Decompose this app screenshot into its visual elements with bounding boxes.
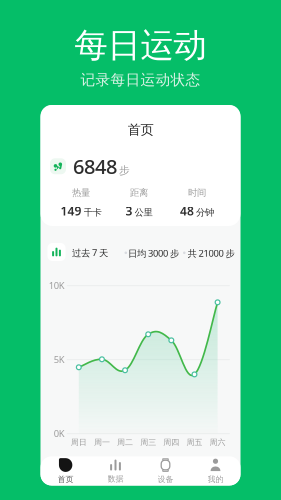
staticText: 千卡 — [83, 207, 101, 218]
staticText: 10K — [49, 279, 65, 291]
button[interactable]: 设备 — [140, 457, 190, 485]
staticText: 周一 — [94, 437, 110, 447]
staticText: 过去 7 天 — [72, 246, 108, 259]
staticText: 热量 — [72, 187, 90, 198]
staticText: 周二 — [117, 437, 133, 447]
staticText: 公里 — [134, 207, 152, 218]
staticText: 共 21000 步 — [187, 247, 234, 259]
staticText: 时间 — [188, 187, 206, 198]
staticText: 步 — [119, 164, 130, 177]
staticText: 距离 — [130, 187, 148, 198]
staticText: 数据 — [107, 474, 123, 484]
staticText: 3 — [125, 203, 132, 219]
staticText: 48 — [180, 203, 194, 219]
button[interactable]: 数据 — [90, 457, 140, 485]
staticText: 5K — [54, 353, 65, 365]
staticText: 记录每日运动状态 — [80, 71, 200, 89]
staticText: 首页 — [127, 121, 153, 138]
button[interactable]: 我的 — [190, 457, 240, 485]
staticText: 设备 — [157, 474, 173, 484]
staticText: 周三 — [140, 437, 156, 447]
staticText: 日均 3000 步 — [128, 247, 179, 259]
staticText: 周日 — [71, 437, 87, 447]
staticText: 首页 — [57, 474, 73, 484]
staticText: 149 — [60, 203, 81, 219]
staticText: 6848 — [73, 153, 117, 180]
staticText: 周六 — [210, 437, 226, 447]
staticText: 周四 — [163, 437, 179, 447]
staticText: 每日运动 — [74, 25, 206, 66]
staticText: 分钟 — [196, 207, 214, 218]
staticText: 0K — [54, 427, 65, 439]
staticText: 周五 — [186, 437, 202, 447]
button[interactable]: 首页 — [40, 457, 90, 485]
staticText: 我的 — [207, 474, 223, 484]
